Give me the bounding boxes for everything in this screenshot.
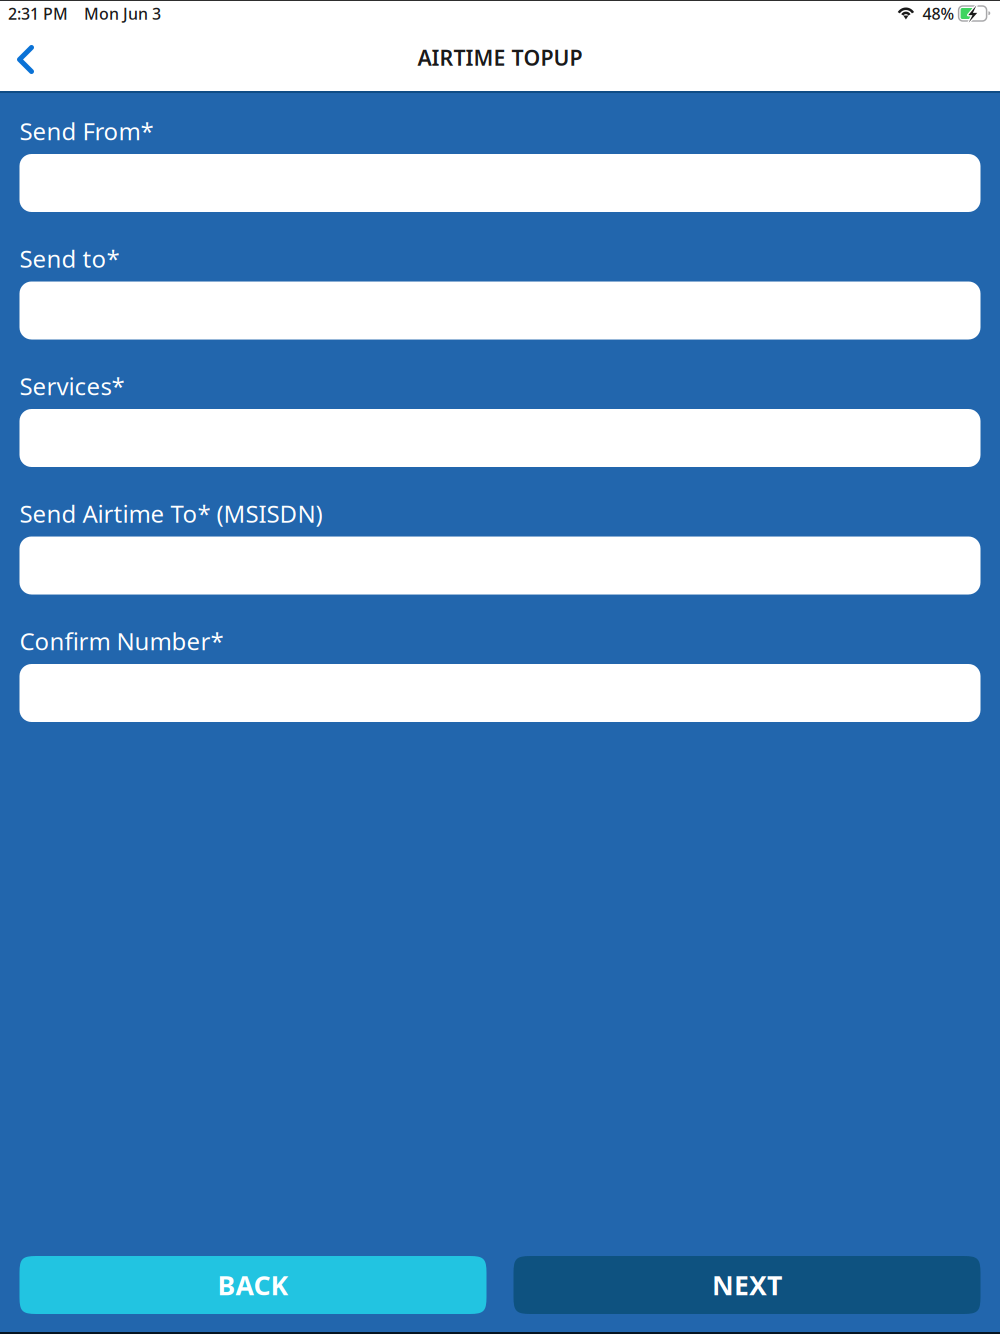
button[interactable]: NEXT [513, 1256, 980, 1314]
staticText: Mon Jun 3 [84, 3, 161, 24]
staticText: NEXT [712, 1267, 782, 1303]
staticText: 48% [919, 3, 959, 24]
button[interactable]: Back [0, 33, 52, 84]
staticText: Send From* [19, 115, 153, 147]
button[interactable]: BACK [19, 1256, 486, 1314]
staticText: 2:31 PM [8, 3, 68, 24]
button[interactable]: Confirm Number* [19, 664, 980, 722]
staticText: Confirm Number* [19, 625, 223, 657]
button[interactable]: Send From* [19, 154, 980, 212]
button[interactable]: Services* [19, 409, 980, 467]
staticText: Send to* [19, 242, 119, 274]
button[interactable]: Send to* [19, 281, 980, 339]
staticText: Services* [19, 370, 124, 402]
staticText: BACK [217, 1267, 288, 1303]
staticText: AIRTIME TOPUP [417, 43, 582, 72]
staticText: Send Airtime To* (MSISDN) [19, 497, 322, 529]
button[interactable]: Send Airtime To* (MSISDN) [19, 536, 980, 594]
